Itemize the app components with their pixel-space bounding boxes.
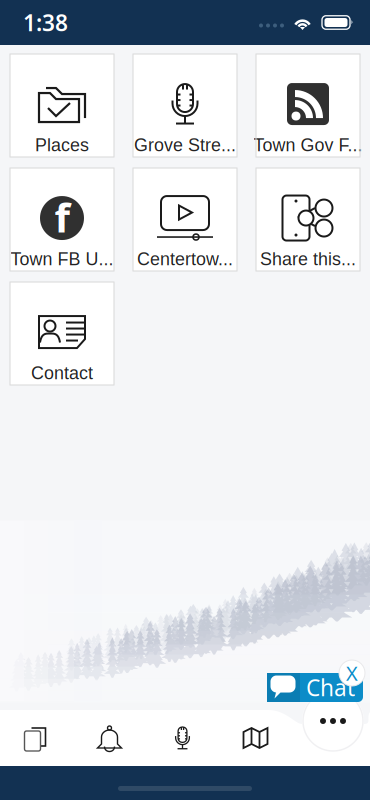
staticText: Town FB U... (10, 249, 113, 269)
staticText: Town Gov F... (253, 135, 362, 155)
button[interactable]: Chat (267, 673, 363, 702)
button[interactable]: Radio (146, 710, 219, 766)
button[interactable]: Share this... (256, 168, 360, 271)
staticText: Centertow... (137, 249, 233, 269)
button[interactable]: Contact (10, 282, 114, 385)
button[interactable]: More (302, 690, 364, 752)
staticText: Contact (31, 363, 93, 383)
staticText: X (346, 660, 358, 686)
staticText: Places (35, 135, 89, 155)
staticText: Chat (306, 672, 355, 702)
staticText: f (54, 190, 69, 244)
button[interactable]: Map (219, 710, 292, 766)
button[interactable]: f (10, 168, 114, 271)
button[interactable]: Close chat (338, 659, 366, 687)
button[interactable]: Centertow... (133, 168, 237, 271)
button[interactable]: Places (10, 54, 114, 157)
button[interactable]: Alerts (73, 710, 146, 766)
button[interactable]: Town Gov F... (256, 54, 360, 157)
staticText: Share this... (260, 249, 356, 269)
staticText: 1:38 (23, 7, 68, 37)
staticText: Grove Stre... (134, 135, 236, 155)
button[interactable]: Pages (0, 710, 73, 766)
button[interactable]: Grove Stre... (133, 54, 237, 157)
